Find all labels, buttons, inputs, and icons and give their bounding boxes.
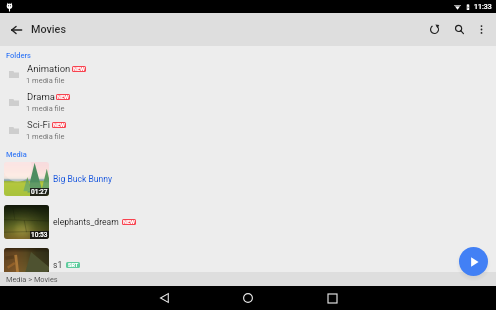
staticText: 1 media file — [26, 76, 65, 85]
staticText: NEW — [123, 219, 135, 225]
staticText: NEW — [57, 94, 69, 100]
button[interactable]: Play — [459, 247, 488, 276]
staticText: 10:53 — [31, 231, 48, 239]
staticText: s1 — [53, 260, 63, 270]
button[interactable]: Drama — [0, 88, 496, 116]
button[interactable]: Back — [5, 13, 28, 46]
staticText: 11:33 — [474, 3, 492, 11]
staticText: Media > Movies — [6, 275, 58, 284]
button[interactable]: Search — [447, 13, 472, 46]
staticText: NEW — [73, 66, 85, 72]
button[interactable]: Recents — [311, 286, 353, 310]
staticText: SRT — [68, 262, 79, 268]
staticText: 1 media file — [26, 104, 65, 113]
staticText: Big Buck Bunny — [53, 174, 113, 184]
button[interactable]: Folders — [6, 51, 31, 60]
button[interactable]: Media — [6, 150, 27, 159]
button[interactable]: Sci-Fi — [0, 116, 496, 144]
button[interactable]: More options — [471, 13, 491, 46]
staticText: elephants_dream — [53, 217, 119, 227]
button[interactable]: Refresh — [422, 13, 447, 46]
button[interactable]: 10:53 — [0, 205, 496, 239]
staticText: Sci-Fi — [27, 119, 51, 130]
staticText: Media — [6, 150, 27, 159]
button[interactable]: Home — [227, 286, 269, 310]
button[interactable]: s1 — [0, 248, 496, 282]
button[interactable]: Back — [143, 286, 185, 310]
button[interactable]: Animation — [0, 60, 496, 88]
staticText: Animation — [27, 63, 71, 74]
staticText: Movies — [31, 23, 66, 36]
staticText: 1 media file — [26, 132, 65, 141]
button[interactable]: 01:27 — [0, 162, 496, 196]
staticText: Folders — [6, 51, 31, 60]
staticText: NEW — [53, 122, 65, 128]
staticText: Drama — [27, 91, 55, 102]
button[interactable]: Media > Movies — [0, 272, 496, 286]
staticText: 01:27 — [31, 188, 48, 196]
